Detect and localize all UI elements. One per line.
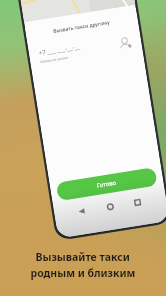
button[interactable]: Вызывайте такси родным и близким	[0, 0, 166, 296]
